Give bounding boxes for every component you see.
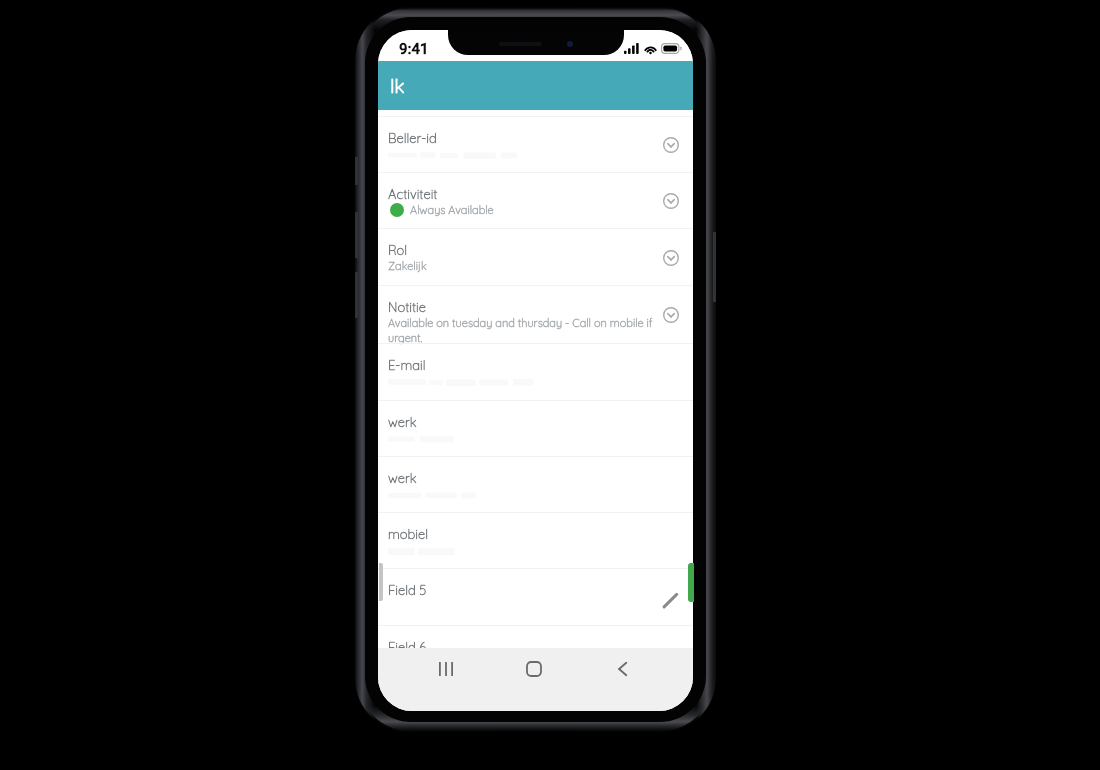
button[interactable]: Edit <box>659 590 681 612</box>
staticText: Notitie <box>388 299 426 315</box>
button[interactable]: Ik <box>378 61 693 110</box>
staticText: Field 5 <box>388 582 427 598</box>
staticText: Zakelijk <box>388 259 427 273</box>
button[interactable]: Notitie <box>378 286 693 344</box>
staticText: Rol <box>388 242 408 258</box>
button[interactable]: werk <box>378 457 693 513</box>
button[interactable]: Back <box>599 646 645 692</box>
staticText: werk <box>388 414 417 430</box>
button[interactable]: Expand <box>660 190 682 212</box>
button[interactable]: werk <box>378 401 693 457</box>
staticText: Always Available <box>410 203 494 217</box>
staticText: Activiteit <box>388 186 438 202</box>
button[interactable]: mobiel <box>378 513 693 569</box>
button[interactable]: Activiteit <box>378 173 693 229</box>
staticText: Available on tuesday and thursday - Call… <box>388 316 653 344</box>
staticText: Field 6 <box>388 639 427 655</box>
staticText: werk <box>388 470 417 486</box>
staticText: mobiel <box>388 526 429 542</box>
staticText: 9:41 <box>399 40 429 58</box>
staticText: E-mail <box>388 357 426 373</box>
button[interactable]: Recent apps <box>423 646 469 692</box>
button[interactable]: Rol <box>378 229 693 286</box>
staticText: Beller-id <box>388 130 437 146</box>
button[interactable]: E-mail <box>378 344 693 401</box>
button[interactable]: Expand <box>660 247 682 269</box>
button[interactable]: Beller-id <box>378 117 693 173</box>
button[interactable]: Field 5 <box>378 569 693 626</box>
button[interactable]: Field 6 <box>378 626 693 683</box>
staticText: Ik <box>390 74 405 98</box>
button[interactable]: Expand <box>660 304 682 326</box>
button[interactable]: Expand <box>660 134 682 156</box>
button[interactable]: Home <box>511 646 557 692</box>
